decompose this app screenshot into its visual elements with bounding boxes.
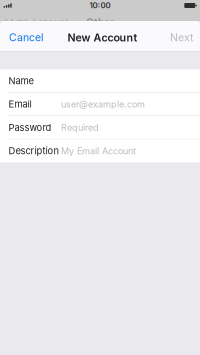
staticText: My Email Account: [61, 145, 136, 156]
staticText: 10:00: [89, 1, 110, 10]
button[interactable]: Name: [0, 69, 200, 92]
staticText: user@example.com: [61, 99, 145, 110]
staticText: Password: [8, 122, 51, 133]
staticText: Required: [61, 122, 99, 133]
button[interactable]: Description: [0, 140, 200, 162]
staticText: Cancel: [9, 31, 44, 44]
staticText: Other: [86, 16, 114, 29]
button[interactable]: Cancel: [0, 24, 52, 51]
staticText: Description: [8, 145, 59, 156]
staticText: Email: [8, 98, 31, 110]
button[interactable]: Password: [0, 116, 200, 139]
staticText: New Account: [67, 31, 137, 44]
staticText: Next: [170, 31, 193, 44]
staticText: Add Account: [9, 17, 69, 28]
staticText: Name: [8, 75, 33, 86]
button[interactable]: Next: [162, 24, 200, 51]
button[interactable]: Email: [0, 93, 200, 115]
